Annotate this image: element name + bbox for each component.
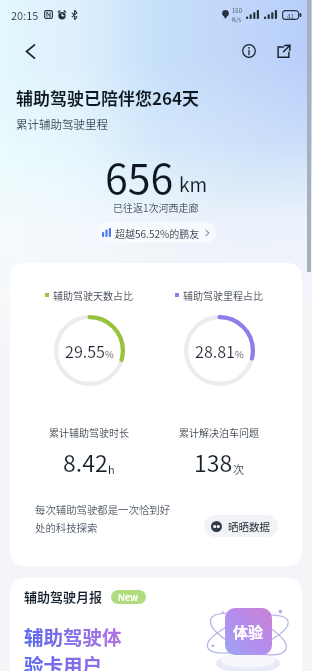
staticText: 20:15 xyxy=(11,7,39,23)
staticText: % xyxy=(235,347,244,361)
staticText: 656 xyxy=(105,146,174,205)
staticText: 已往返1次河西走廊 xyxy=(113,200,199,214)
staticText: 41 xyxy=(287,11,295,20)
staticText: 29.55 xyxy=(65,339,105,362)
staticText: 辅助驾驶已陪伴您264天 xyxy=(16,85,200,110)
staticText: 累计辅助驾驶里程 xyxy=(16,116,108,133)
staticText: 138 xyxy=(194,445,233,478)
staticText: % xyxy=(105,347,114,361)
staticText: km xyxy=(179,170,208,198)
staticText: 辅助驾驶体 xyxy=(24,622,122,650)
staticText: 验卡用户 xyxy=(24,650,103,671)
staticText: 次 xyxy=(233,461,244,477)
staticText: 超越56.52%的鹏友 xyxy=(115,226,200,240)
staticText: 160 xyxy=(232,6,242,15)
button[interactable]: Back xyxy=(13,34,47,68)
button[interactable]: 超越56.52%的鹏友 xyxy=(96,222,216,243)
staticText: 晒晒数据 xyxy=(228,519,270,534)
button[interactable]: Info xyxy=(234,36,264,66)
staticText: 辅助驾驶天数占比 xyxy=(53,288,133,302)
staticText: 累计解决泊车问题 xyxy=(179,425,259,439)
button[interactable]: 晒晒数据 xyxy=(204,515,278,537)
button[interactable]: 辅助驾驶月报 xyxy=(10,578,302,671)
staticText: 辅助驾驶里程占比 xyxy=(183,288,263,302)
staticText: 每次辅助驾驶都是一次恰到好处的科技探索 xyxy=(35,502,171,535)
staticText: 28.81 xyxy=(195,339,235,362)
button[interactable]: Share xyxy=(268,36,298,66)
staticText: 辅助驾驶月报 xyxy=(24,587,103,606)
staticText: 体验 xyxy=(233,621,264,643)
staticText: 8.42 xyxy=(63,445,108,478)
staticText: K/s xyxy=(232,15,242,24)
staticText: New xyxy=(118,590,139,604)
staticText: 累计辅助驾驶时长 xyxy=(49,425,129,439)
staticText: h xyxy=(108,461,115,477)
